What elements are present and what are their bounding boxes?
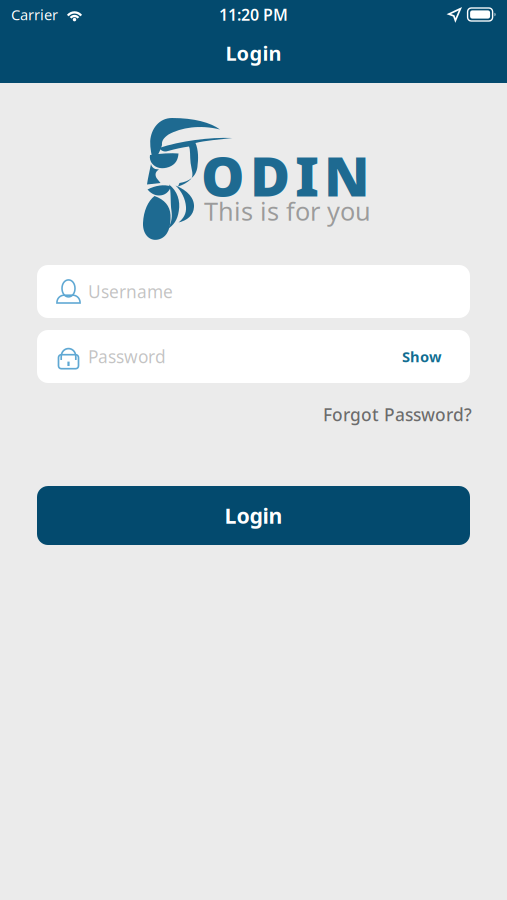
staticText: Carrier <box>11 5 58 24</box>
button[interactable]: Username <box>37 265 470 318</box>
staticText: Forgot Password? <box>323 403 472 426</box>
staticText: Password <box>88 345 166 368</box>
button[interactable]: Forgot Password? <box>323 403 472 426</box>
button[interactable]: Login <box>37 486 470 545</box>
staticText: This is for you <box>204 194 371 228</box>
staticText: 11:20 PM <box>219 4 288 25</box>
staticText: Login <box>225 40 281 66</box>
button[interactable]: Show <box>402 347 451 366</box>
staticText: Show <box>402 347 442 366</box>
staticText: Username <box>88 280 173 303</box>
staticText: ODIN <box>201 139 370 212</box>
staticText: Login <box>224 501 282 530</box>
